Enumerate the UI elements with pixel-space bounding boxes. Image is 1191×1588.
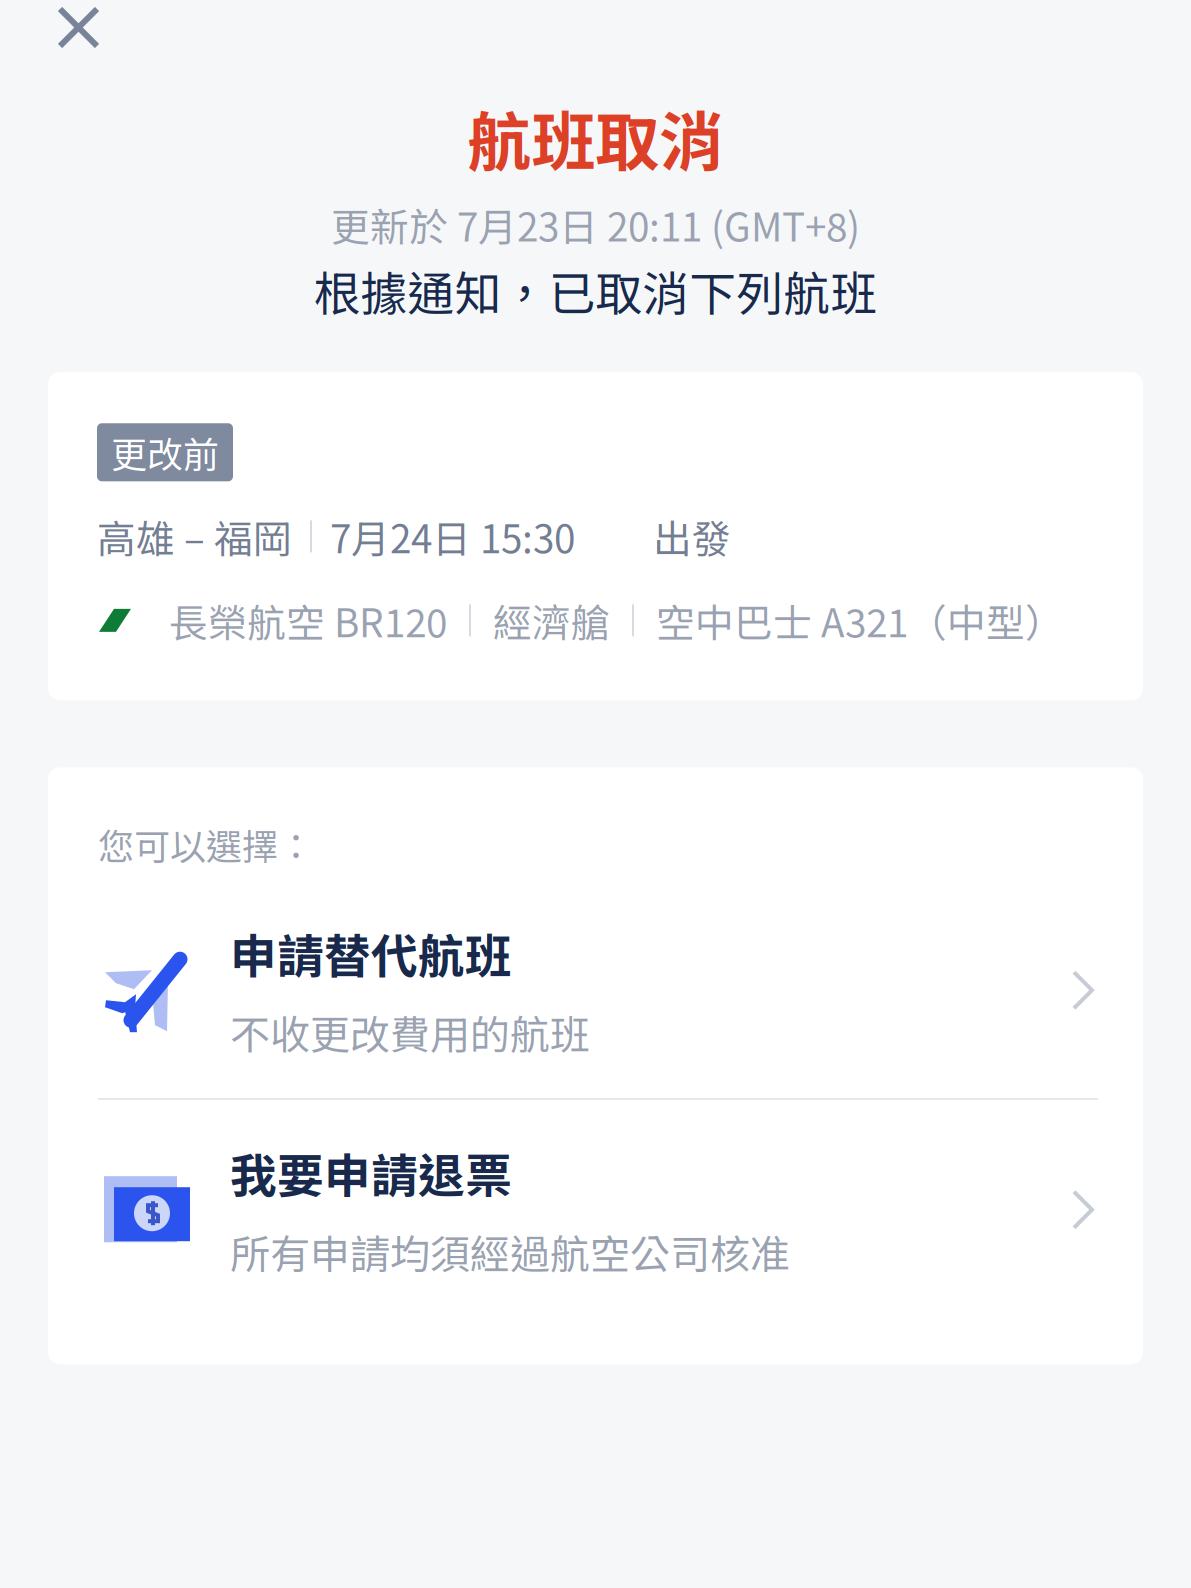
staticText: 更改前 [111, 426, 219, 478]
staticText: 空中巴士 A321（中型） [656, 592, 1064, 648]
staticText: 您可以選擇： [98, 818, 314, 870]
staticText: 航班取消 [467, 91, 723, 184]
staticText: 根據通知，已取消下列航班 [313, 257, 877, 324]
button[interactable]: 申請替代航班 [48, 887, 1143, 1093]
staticText: 申請替代航班 [230, 919, 512, 987]
staticText: 我要申請退票 [230, 1139, 512, 1207]
staticText: 經濟艙 [493, 592, 610, 648]
staticText: 7月24日 15:30 [330, 508, 575, 564]
staticText: 更新於 7月23日 20:11 (GMT+8) [331, 197, 860, 253]
staticText: 所有申請均須經過航空公司核准 [230, 1222, 790, 1280]
button[interactable]: 我要申請退票 [48, 1107, 1143, 1312]
staticText: 出發 [653, 508, 731, 564]
staticText: 高雄 – 福岡 [97, 508, 292, 564]
button[interactable]: Close [0, 0, 118, 52]
staticText: 長榮航空 BR120 [169, 592, 447, 648]
staticText: 不收更改費用的航班 [230, 1003, 590, 1061]
